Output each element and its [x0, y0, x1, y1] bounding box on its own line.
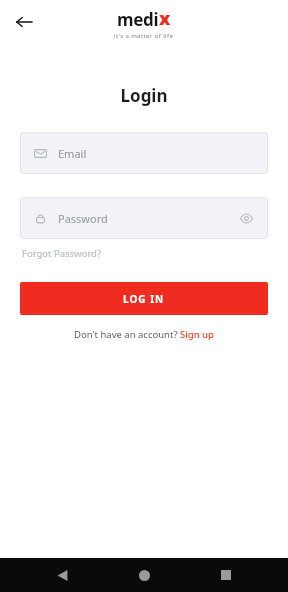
staticText: Email [58, 146, 87, 161]
button[interactable]: Recent apps [206, 558, 246, 592]
button[interactable]: Home [124, 558, 164, 592]
staticText: x [159, 6, 171, 31]
button[interactable]: Password [20, 197, 268, 239]
staticText: Don't have an account? [74, 328, 180, 341]
staticText: it's a matter of life [114, 32, 174, 40]
staticText: Login [0, 84, 288, 107]
staticText: medi [117, 8, 159, 31]
staticText: LOG IN [123, 292, 165, 306]
button[interactable]: Sign up [180, 328, 214, 341]
button[interactable]: LOG IN [20, 282, 268, 315]
button[interactable]: Back [6, 4, 42, 40]
staticText: Forgot Password? [22, 247, 102, 260]
button[interactable]: Email [20, 132, 268, 174]
button[interactable]: Forgot Password? [22, 247, 102, 260]
staticText: Password [58, 211, 108, 226]
button[interactable]: Show password [236, 208, 256, 228]
staticText: Sign up [180, 328, 214, 341]
button[interactable]: Back [42, 558, 82, 592]
